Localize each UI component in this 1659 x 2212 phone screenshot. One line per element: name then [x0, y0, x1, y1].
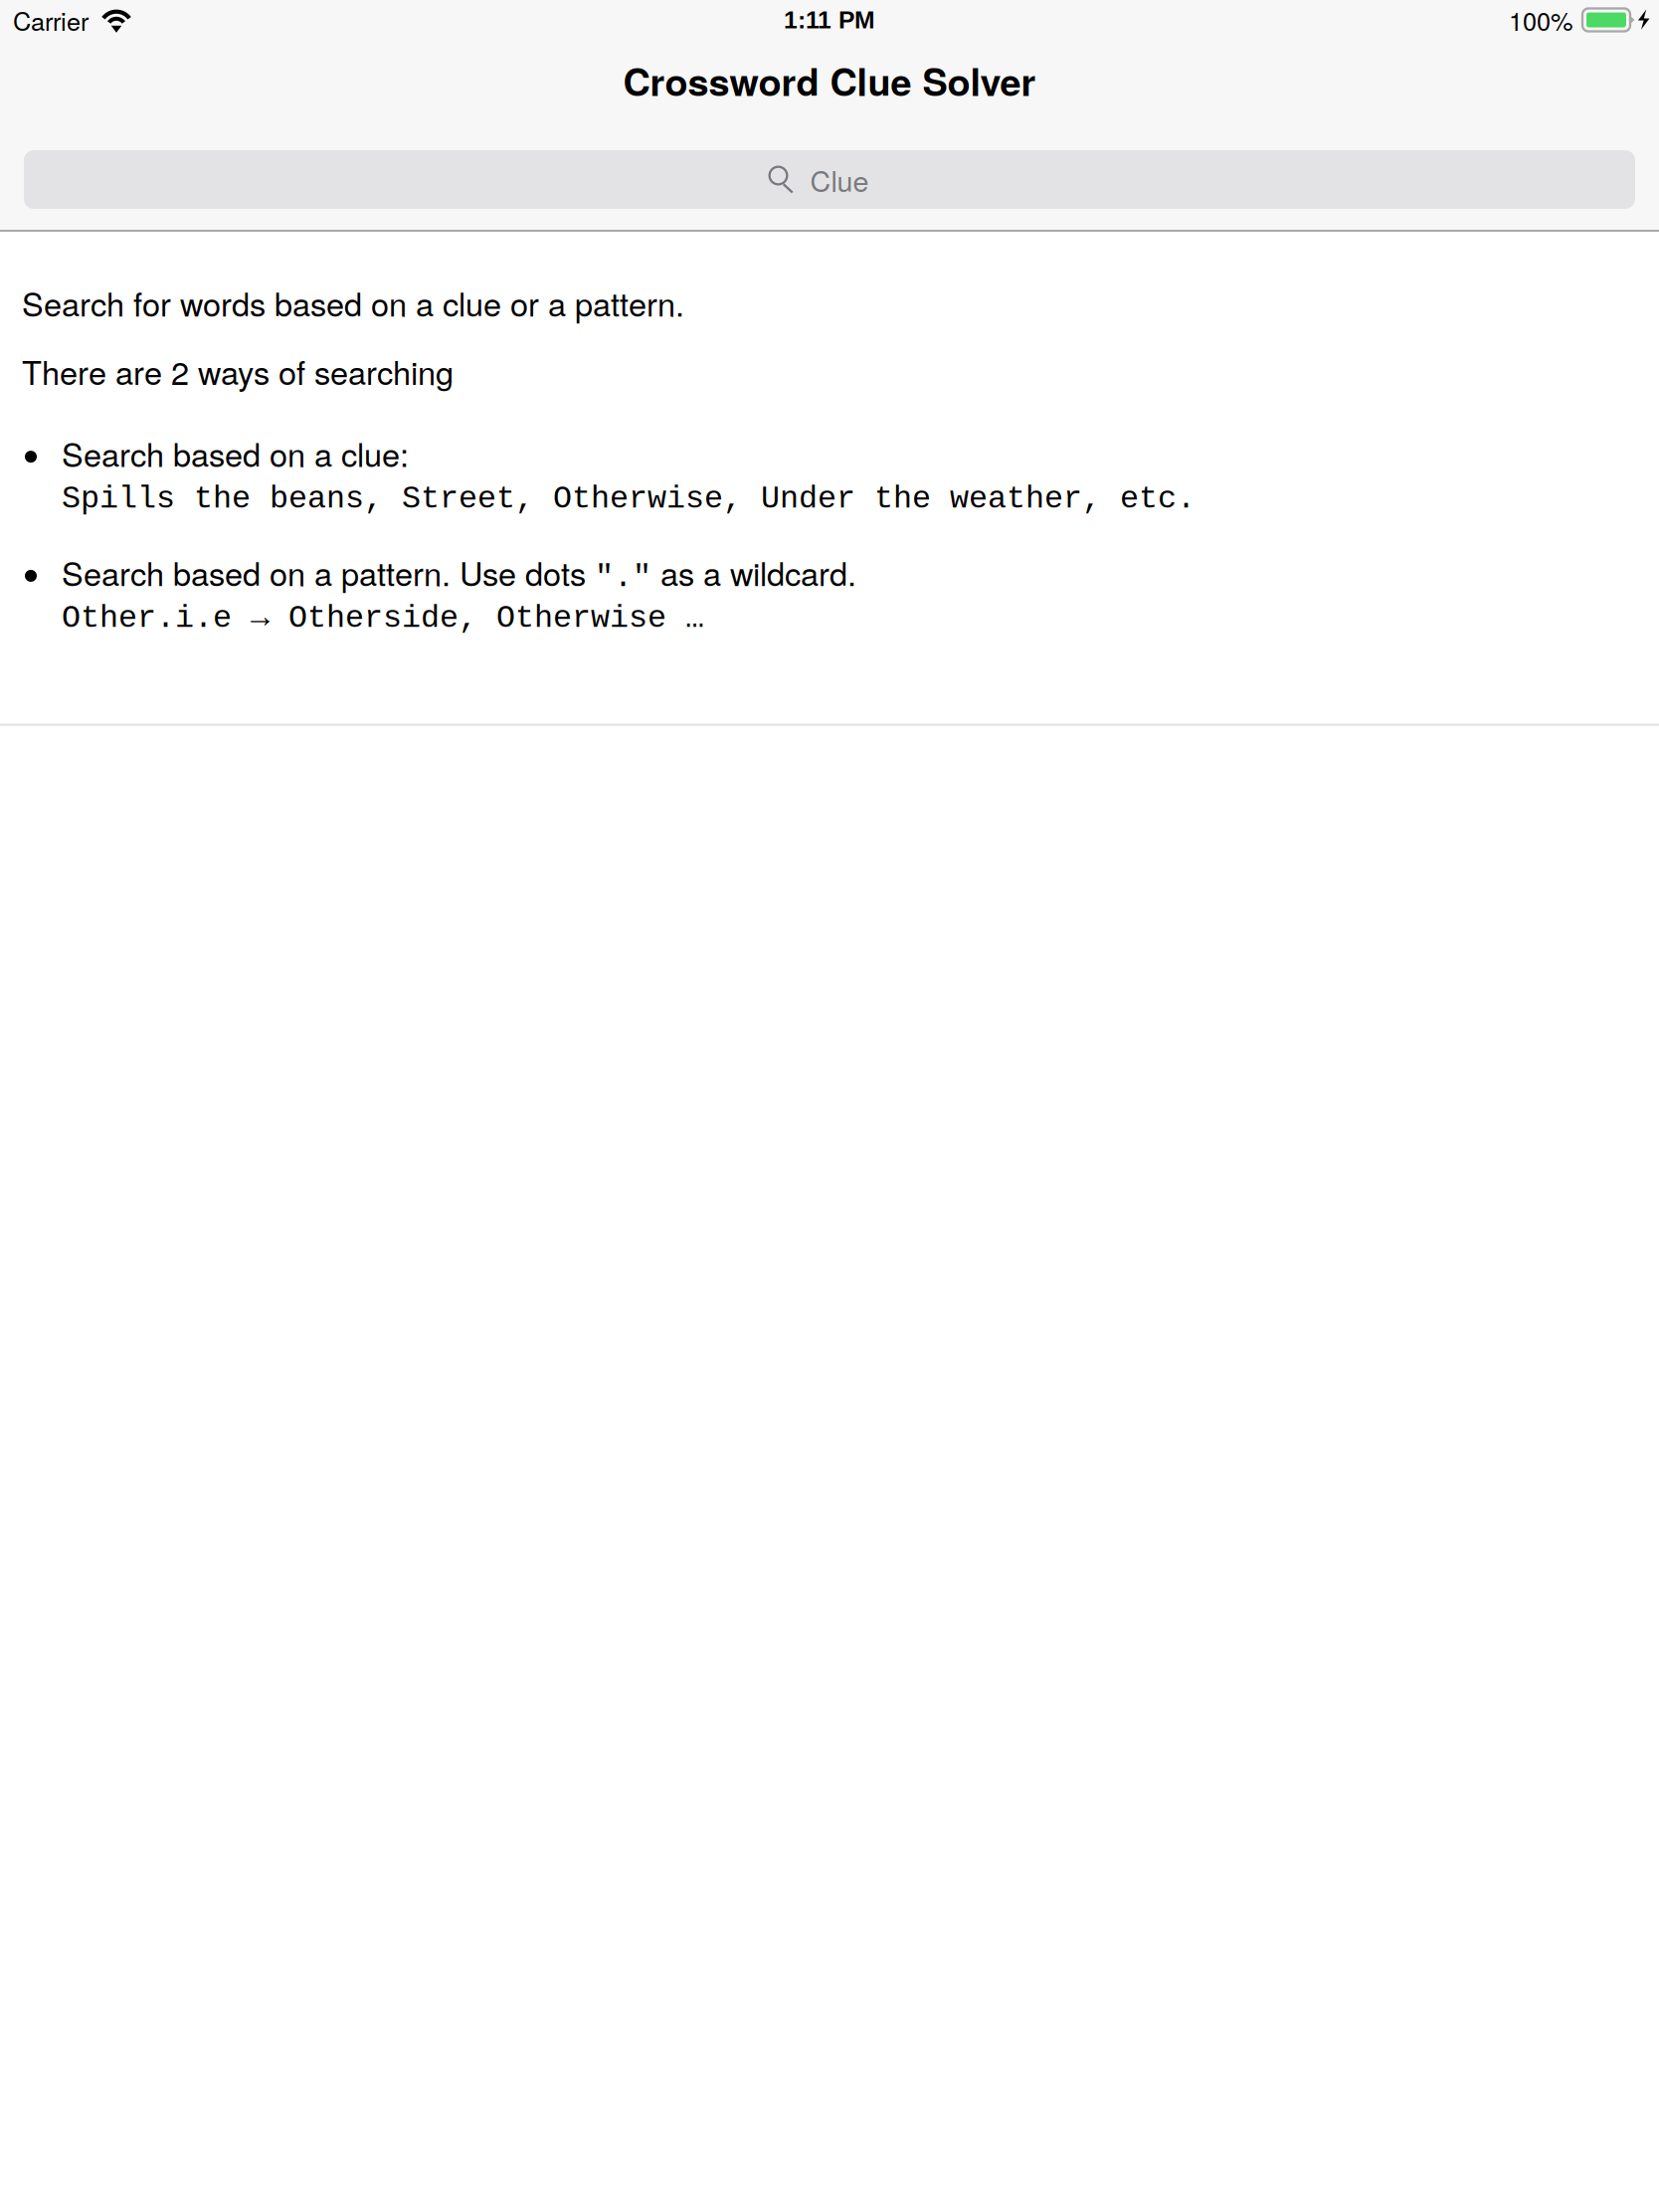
staticText: There are 2 ways of searching	[22, 348, 454, 394]
staticText: Search for words based on a clue or a pa…	[22, 279, 684, 326]
staticText: 1:11 PM	[784, 6, 875, 34]
staticText: 100%	[1509, 2, 1573, 38]
staticText: Spills the beans, Street, Otherwise, Und…	[62, 481, 1196, 517]
staticText: Carrier	[13, 2, 89, 38]
staticText: Search based on a pattern. Use dots "." …	[62, 549, 856, 596]
button[interactable]: Clue search field	[24, 150, 1635, 209]
staticText: Crossword Clue Solver	[623, 54, 1036, 108]
staticText: Clue	[810, 159, 869, 200]
staticText: Other.i.e → Otherside, Otherwise …	[62, 601, 704, 636]
staticText: Search based on a clue:	[62, 430, 409, 476]
